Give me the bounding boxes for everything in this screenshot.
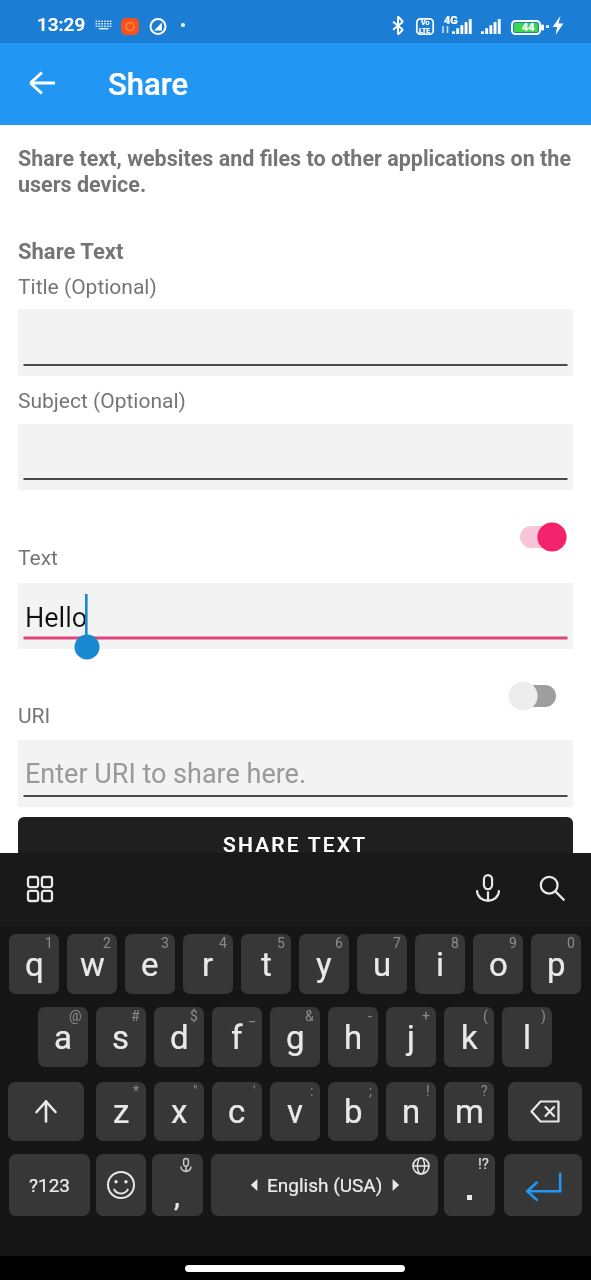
staticText: Subject (Optional) xyxy=(18,389,186,414)
staticText: t xyxy=(261,945,272,984)
staticText: 13:29 xyxy=(37,13,86,35)
staticText: z xyxy=(113,1092,130,1131)
staticText: Vo xyxy=(421,19,430,27)
staticText: - xyxy=(368,1008,372,1024)
staticText: i xyxy=(436,945,445,984)
staticText: : xyxy=(310,1083,314,1099)
staticText: 6 xyxy=(335,935,343,951)
button[interactable] xyxy=(18,424,573,490)
staticText: r xyxy=(202,945,214,984)
staticText: ) xyxy=(541,1008,546,1024)
staticText: _ xyxy=(249,1008,256,1024)
button[interactable]: SHARE TEXT xyxy=(18,817,573,877)
button[interactable]: w xyxy=(67,934,117,994)
staticText: j xyxy=(407,1018,415,1057)
button[interactable]: z xyxy=(96,1082,146,1141)
button[interactable]: j xyxy=(386,1007,436,1067)
button[interactable]: d xyxy=(154,1007,204,1067)
staticText: ; xyxy=(369,1083,372,1099)
staticText: !? xyxy=(478,1155,489,1173)
button[interactable]: q xyxy=(9,934,59,994)
staticText: f xyxy=(231,1018,243,1057)
staticText: b xyxy=(344,1092,363,1131)
button[interactable] xyxy=(18,583,573,649)
staticText: ?123 xyxy=(29,1174,71,1196)
staticText: w xyxy=(80,945,105,984)
staticText: m xyxy=(455,1092,484,1131)
button[interactable]: Search xyxy=(528,864,576,912)
button[interactable]: p xyxy=(531,934,581,994)
button[interactable]: Share URI toggle, off xyxy=(505,678,565,718)
button[interactable]: t xyxy=(241,934,291,994)
button[interactable]: l xyxy=(502,1007,552,1067)
staticText: ! xyxy=(426,1083,430,1099)
button[interactable]: English (USA) xyxy=(211,1154,438,1216)
staticText: 2 xyxy=(103,935,111,951)
staticText: 5 xyxy=(277,935,285,951)
button[interactable]: r xyxy=(183,934,233,994)
staticText: a xyxy=(54,1018,72,1057)
staticText: Share text, websites and files to other … xyxy=(18,146,574,197)
button[interactable]: c xyxy=(212,1082,262,1141)
staticText: ' xyxy=(253,1083,256,1099)
staticText: ? xyxy=(481,1083,488,1099)
staticText: 4G xyxy=(444,14,458,27)
button[interactable]: k xyxy=(444,1007,494,1067)
button[interactable]: s xyxy=(96,1007,146,1067)
button[interactable]: o xyxy=(473,934,523,994)
button[interactable]: e xyxy=(125,934,175,994)
staticText: LTE xyxy=(419,27,431,35)
staticText: 44 xyxy=(522,21,535,34)
staticText: l xyxy=(523,1018,532,1057)
staticText: Share xyxy=(108,66,188,102)
staticText: Share Text xyxy=(18,239,124,265)
staticText: Enter URI to share here. xyxy=(25,758,307,790)
staticText: q xyxy=(25,945,44,984)
staticText: x xyxy=(171,1092,188,1131)
button[interactable]: n xyxy=(386,1082,436,1141)
button[interactable]: Navigate up xyxy=(15,56,69,110)
button[interactable]: Enter xyxy=(504,1154,582,1216)
button[interactable]: Emoji xyxy=(96,1154,146,1216)
staticText: # xyxy=(131,1008,140,1024)
staticText: , xyxy=(174,1178,180,1213)
button[interactable]: Backspace xyxy=(508,1082,582,1141)
button[interactable]: y xyxy=(299,934,349,994)
button[interactable]: m xyxy=(444,1082,494,1141)
button[interactable]: u xyxy=(357,934,407,994)
staticText: 1 xyxy=(45,935,53,951)
button[interactable]: Period xyxy=(444,1154,495,1216)
button[interactable]: v xyxy=(270,1082,320,1141)
button[interactable]: b xyxy=(328,1082,378,1141)
button[interactable]: Share text toggle, on xyxy=(510,518,570,558)
staticText: 7 xyxy=(393,935,401,951)
staticText: k xyxy=(461,1018,478,1057)
staticText: o xyxy=(489,945,508,984)
button[interactable]: Clipboard xyxy=(16,865,64,913)
staticText: " xyxy=(193,1083,198,1099)
staticText: g xyxy=(286,1018,305,1057)
button[interactable]: f xyxy=(212,1007,262,1067)
button[interactable]: ?123 xyxy=(9,1154,90,1216)
button[interactable]: g xyxy=(270,1007,320,1067)
staticText: 8 xyxy=(451,935,459,951)
staticText: 0 xyxy=(567,935,575,951)
button[interactable] xyxy=(18,740,573,807)
staticText: ( xyxy=(483,1008,488,1024)
button[interactable]: x xyxy=(154,1082,204,1141)
button[interactable]: Voice input xyxy=(464,864,512,912)
button[interactable]: h xyxy=(328,1007,378,1067)
button[interactable]: i xyxy=(415,934,465,994)
staticText: 3 xyxy=(161,935,169,951)
staticText: * xyxy=(133,1083,140,1099)
staticText: s xyxy=(112,1018,130,1057)
button[interactable]: Comma xyxy=(152,1154,203,1216)
button[interactable] xyxy=(18,309,573,376)
button[interactable]: a xyxy=(38,1007,88,1067)
staticText: v xyxy=(287,1092,303,1131)
staticText: h xyxy=(344,1018,363,1057)
staticText: u xyxy=(373,945,392,984)
button[interactable]: Shift xyxy=(8,1082,84,1141)
staticText: y xyxy=(316,945,332,984)
staticText: $ xyxy=(190,1008,198,1024)
